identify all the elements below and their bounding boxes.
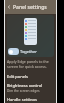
staticText: Handle settings xyxy=(7,97,37,101)
staticText: Brightness control xyxy=(7,83,43,88)
staticText: Edit panels xyxy=(7,74,28,79)
button[interactable]: Edit panels xyxy=(5,72,56,81)
button[interactable]: Handle settings xyxy=(5,95,56,103)
button[interactable]: Brightness control xyxy=(5,81,56,95)
button[interactable]: Back xyxy=(5,3,13,11)
staticText: Together xyxy=(20,49,37,54)
staticText: Apply Edge panels to the side of your xyxy=(7,59,54,64)
staticText: screen for quick access. xyxy=(7,64,47,69)
staticText: Dim the screen edges xyxy=(7,89,40,93)
staticText: Panel settings xyxy=(13,4,47,11)
